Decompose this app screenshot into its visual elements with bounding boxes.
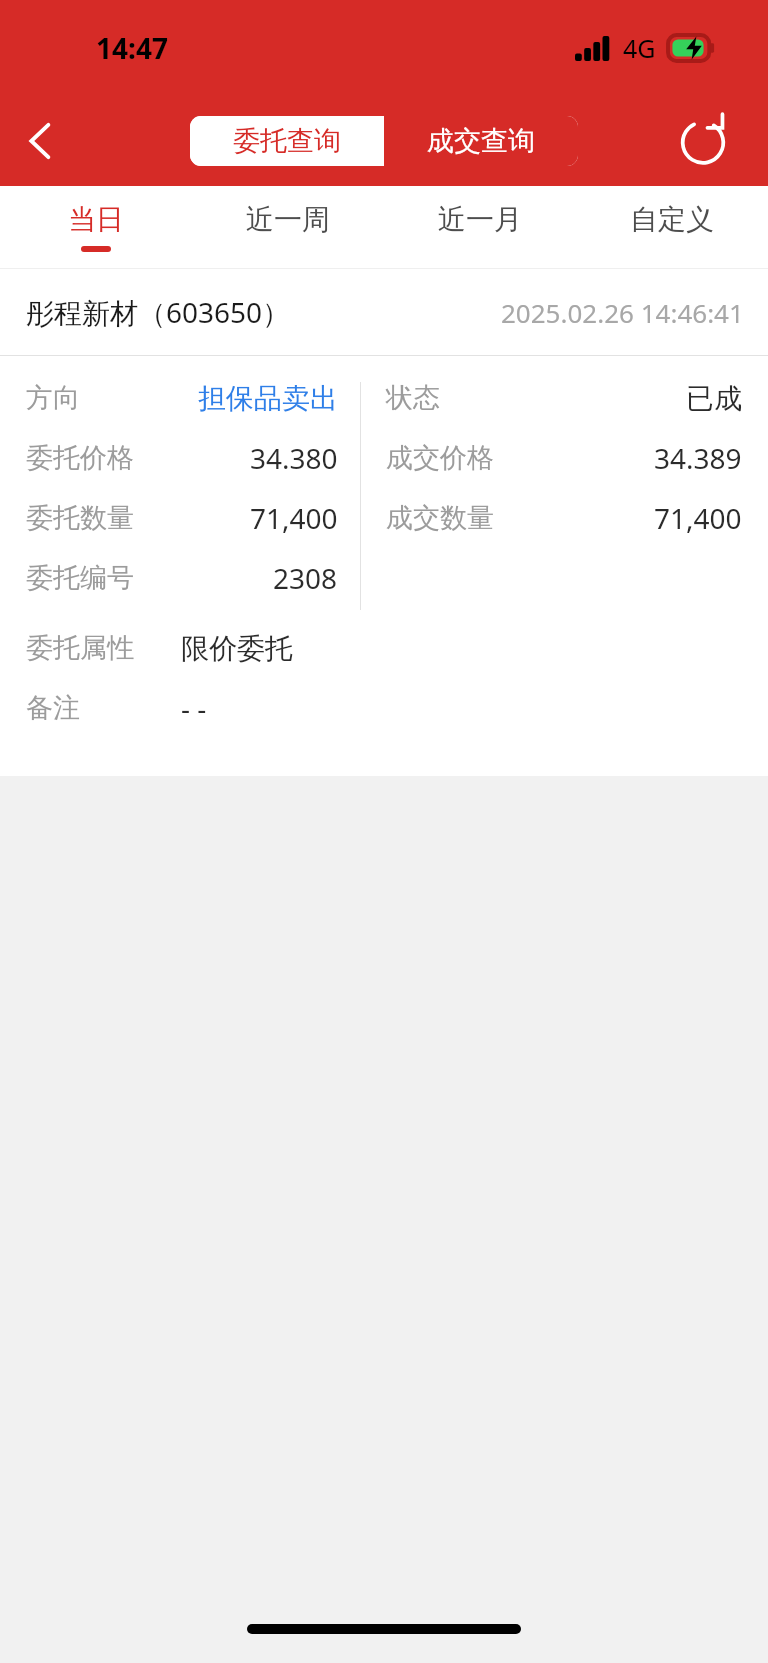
staticText: 近一周 [246, 202, 330, 237]
staticText: 成交数量 [386, 501, 494, 535]
staticText: 自定义 [630, 202, 714, 237]
staticText: 71,400 [250, 499, 338, 537]
staticText: 担保品卖出 [198, 381, 338, 416]
staticText: 委托编号 [26, 561, 134, 595]
staticText: 近一月 [438, 202, 522, 237]
staticText: 限价委托 [181, 631, 293, 666]
staticText: 委托查询 [233, 124, 341, 158]
button[interactable]: 委托查询 [190, 116, 384, 166]
staticText: 备注 [26, 691, 181, 725]
staticText: 2308 [273, 559, 338, 597]
button[interactable]: 近一月 [384, 186, 576, 268]
staticText: 2025.02.26 14:46:41 [501, 295, 744, 330]
staticText: - - [181, 689, 207, 727]
staticText: 委托属性 [26, 631, 181, 665]
staticText: 71,400 [654, 499, 742, 537]
staticText: 34.380 [250, 439, 338, 477]
staticText: 彤程新材（603650） [26, 293, 291, 331]
button[interactable]: Back [8, 108, 74, 174]
staticText: 成交查询 [427, 124, 535, 158]
staticText: 状态 [386, 381, 440, 415]
button[interactable]: 成交查询 [384, 116, 578, 166]
staticText: 已成 [686, 381, 742, 416]
button[interactable]: Refresh [670, 108, 736, 174]
staticText: 当日 [68, 202, 124, 237]
staticText: 成交价格 [386, 441, 494, 475]
staticText: 4G [623, 31, 656, 65]
button[interactable]: 自定义 [576, 186, 768, 268]
staticText: 委托数量 [26, 501, 134, 535]
staticText: 委托价格 [26, 441, 134, 475]
button[interactable]: 近一周 [192, 186, 384, 268]
staticText: 34.389 [654, 439, 742, 477]
button[interactable]: 当日 [0, 186, 192, 268]
staticText: 方向 [26, 381, 80, 415]
staticText: 14:47 [96, 29, 168, 67]
